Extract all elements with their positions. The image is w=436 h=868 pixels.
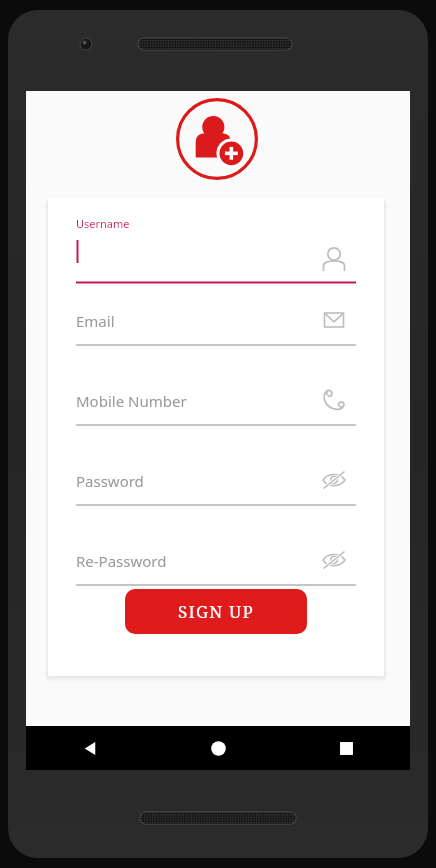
other: App logo: add user [176, 98, 258, 180]
button[interactable]: SIGN UP [125, 589, 307, 634]
button[interactable]: Username [76, 216, 356, 284]
button[interactable]: Password [76, 466, 356, 506]
staticText: Username [76, 216, 130, 231]
staticText: SIGN UP [178, 600, 254, 623]
button[interactable]: Recent apps [282, 726, 410, 770]
staticText: Re-Password [76, 551, 167, 571]
button[interactable]: Re-Password [76, 546, 356, 586]
button[interactable]: Email [76, 306, 356, 346]
staticText: Password [76, 471, 144, 491]
staticText: Mobile Number [76, 391, 187, 411]
button[interactable]: Home [154, 726, 282, 770]
staticText: Email [76, 311, 115, 331]
button[interactable]: Mobile Number [76, 386, 356, 426]
button[interactable]: Back [26, 726, 154, 770]
